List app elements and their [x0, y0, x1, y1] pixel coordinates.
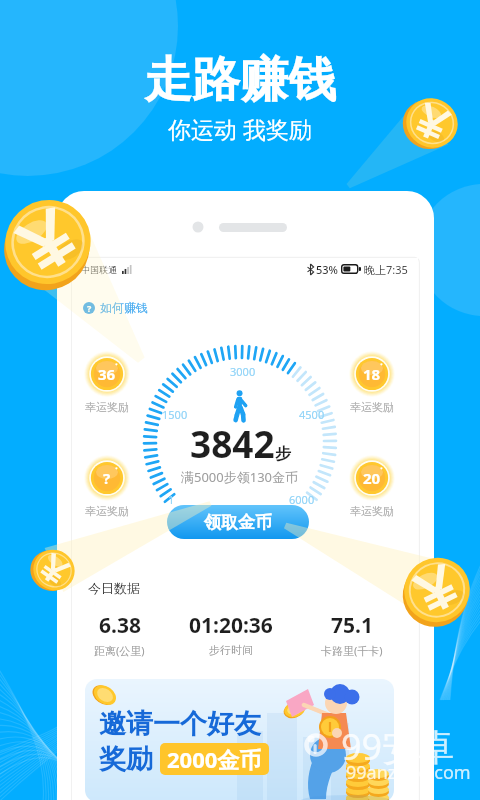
staticText: 6000	[289, 492, 315, 507]
staticText: 奖励	[99, 742, 153, 776]
staticText: 你运动 我奖励	[168, 113, 312, 144]
staticText: 中国联通	[81, 264, 117, 275]
button[interactable]: 幸运奖励 36	[84, 351, 130, 414]
staticText: ?	[103, 468, 111, 488]
staticText: 01:20:36	[189, 611, 273, 640]
button[interactable]: 6.38	[67, 611, 171, 658]
button[interactable]: 幸运奖励 ?	[84, 455, 130, 518]
staticText: 满5000步领130金币	[181, 468, 299, 486]
staticText: 走路赚钱	[144, 50, 336, 110]
staticText: 步行时间	[209, 643, 253, 657]
staticText: 幸运奖励	[85, 504, 129, 518]
staticText: 18	[363, 364, 381, 384]
staticText: 今日数据	[88, 580, 140, 596]
staticText: 2000金币	[167, 744, 262, 774]
staticText: 幸运奖励	[85, 400, 129, 414]
staticText: 邀请一个好友	[99, 707, 261, 741]
button[interactable]: 75.1	[300, 611, 404, 658]
staticText: 晚上7:35	[364, 262, 408, 277]
staticText: 20	[363, 468, 381, 488]
staticText: 距离(公里)	[94, 643, 145, 658]
staticText: ?	[87, 302, 92, 314]
button[interactable]: 幸运奖励 20	[349, 455, 395, 518]
staticText: 幸运奖励	[350, 504, 394, 518]
button[interactable]: 01:20:36	[179, 611, 283, 657]
staticText: 3000	[230, 364, 256, 379]
staticText: 步	[275, 444, 291, 464]
button[interactable]: 邀请一个好友	[85, 679, 394, 800]
staticText: 99anzhuo.com	[346, 760, 471, 785]
staticText: 36	[98, 364, 116, 384]
button[interactable]: 如何赚钱	[83, 300, 148, 315]
staticText: 卡路里(千卡)	[321, 643, 383, 658]
staticText: 幸运奖励	[350, 400, 394, 414]
button[interactable]: 幸运奖励 18	[349, 351, 395, 414]
staticText: 6.38	[99, 611, 141, 640]
staticText: 1	[168, 492, 175, 507]
staticText: 领取金币	[204, 512, 272, 533]
staticText: 99安卓	[341, 722, 455, 771]
staticText: 53%	[316, 262, 338, 277]
staticText: 1500	[162, 407, 188, 422]
staticText: 3842	[190, 418, 275, 468]
button[interactable]: 领取金币	[167, 505, 309, 539]
staticText: 4500	[299, 407, 325, 422]
staticText: 如何赚钱	[100, 300, 148, 315]
staticText: 75.1	[331, 611, 373, 640]
